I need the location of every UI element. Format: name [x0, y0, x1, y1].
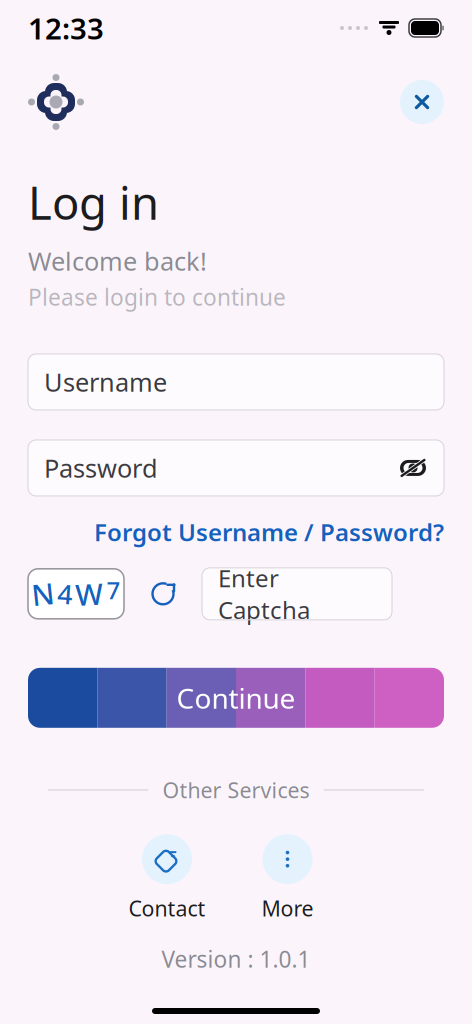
staticText: Password — [44, 451, 158, 485]
button[interactable]: Username — [0, 354, 472, 410]
button[interactable]: Forgot Username / Password? — [94, 516, 444, 548]
staticText: 7 — [106, 574, 120, 606]
staticText: W — [75, 574, 103, 613]
staticText: 12:33 — [28, 8, 104, 47]
staticText: Continue — [176, 679, 295, 716]
staticText: Forgot Username / Password? — [94, 516, 444, 548]
button[interactable]: Refresh captcha — [146, 577, 180, 611]
staticText: Welcome back! — [28, 244, 207, 278]
staticText: Enter Captcha — [218, 562, 310, 626]
button[interactable]: Password — [0, 440, 472, 496]
staticText: More — [261, 894, 313, 922]
staticText: Other Services — [162, 776, 309, 804]
staticText: Contact — [128, 894, 205, 922]
staticText: N — [31, 574, 54, 613]
staticText: Please login to continue — [28, 282, 286, 312]
button[interactable]: Enter Captcha — [202, 568, 392, 620]
staticText: Version : 1.0.1 — [161, 944, 310, 974]
button[interactable]: Contact — [128, 834, 205, 922]
button[interactable]: Close — [400, 80, 444, 124]
staticText: Log in — [28, 172, 159, 232]
staticText: Username — [44, 365, 167, 399]
button[interactable]: More — [261, 834, 313, 922]
button[interactable]: Continue — [0, 668, 472, 728]
staticText: 4 — [57, 576, 72, 611]
